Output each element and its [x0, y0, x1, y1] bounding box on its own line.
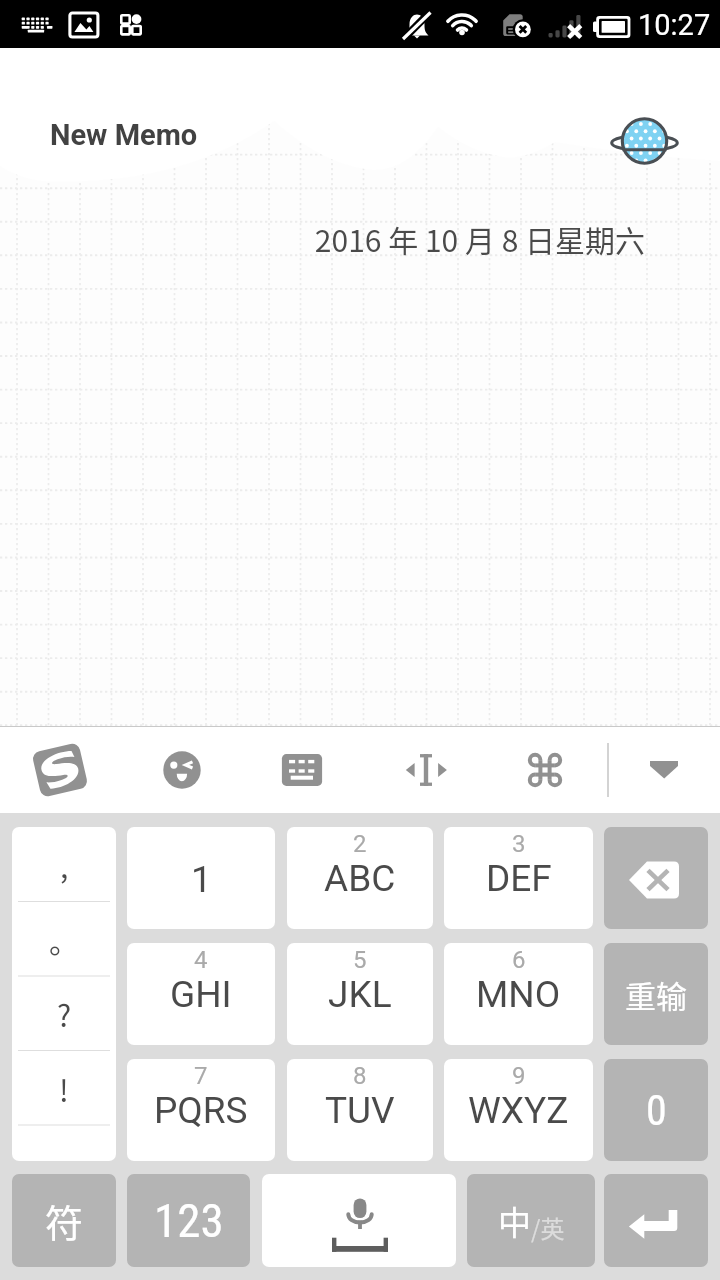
button[interactable]: Emoji [120, 727, 243, 813]
button[interactable]: 5 [287, 943, 433, 1045]
button[interactable]: 3 [444, 827, 593, 929]
staticText: 3 [512, 830, 526, 858]
button[interactable]: 2 [287, 827, 433, 929]
staticText: PQRS [154, 1089, 248, 1132]
staticText: 中 [498, 1197, 531, 1245]
button[interactable]: Sogou input [0, 727, 120, 813]
staticText: 0 [646, 1086, 667, 1135]
button[interactable]: 7 [127, 1059, 275, 1161]
button[interactable]: 6 [444, 943, 593, 1045]
staticText: WXYZ [468, 1089, 569, 1132]
staticText: , [60, 843, 69, 886]
staticText: TUV [325, 1089, 395, 1132]
staticText: MNO [476, 973, 561, 1016]
staticText: DEF [486, 857, 552, 900]
staticText: 1 [191, 858, 212, 901]
button[interactable]: Enter [604, 1174, 708, 1267]
staticText: 4 [194, 946, 208, 974]
button[interactable]: Hide keyboard [608, 727, 720, 813]
button[interactable]: 9 [444, 1059, 593, 1161]
button[interactable]: Theme [611, 113, 678, 169]
button[interactable]: Move cursor [361, 727, 487, 813]
button[interactable]: 符 [12, 1174, 116, 1267]
button[interactable]: 123 [127, 1174, 250, 1267]
staticText: ! [59, 1067, 69, 1110]
staticText: 8 [353, 1062, 367, 1090]
button[interactable]: Keyboard layout [243, 727, 361, 813]
button[interactable]: 0 [604, 1059, 708, 1161]
staticText: 6 [512, 946, 526, 974]
staticText: 123 [154, 1193, 224, 1248]
button[interactable]: 8 [287, 1059, 433, 1161]
staticText: 。 [49, 918, 79, 961]
staticText: 重输 [625, 972, 687, 1017]
button[interactable]: 重输 [604, 943, 708, 1045]
staticText: 5 [353, 946, 367, 974]
staticText: GHI [170, 973, 232, 1016]
staticText: 2 [353, 830, 367, 858]
button[interactable]: 4 [127, 943, 275, 1045]
button[interactable]: Shortcuts [487, 727, 603, 813]
staticText: 2016 年 10 月 8 日星期六 [314, 217, 645, 260]
staticText: 7 [194, 1062, 208, 1090]
button[interactable]: Voice input and space [262, 1174, 456, 1267]
button[interactable]: 1 [127, 827, 275, 929]
staticText: ? [57, 992, 72, 1035]
staticText: JKL [328, 973, 392, 1016]
staticText: 9 [512, 1062, 526, 1090]
staticText: 10:27 [638, 8, 711, 42]
staticText: /英 [531, 1210, 565, 1245]
staticText: ABC [324, 857, 396, 900]
button[interactable]: 中 [467, 1174, 595, 1267]
staticText: New Memo [50, 118, 198, 152]
button[interactable]: Punctuation [12, 827, 116, 1161]
button[interactable]: Backspace [604, 827, 708, 929]
staticText: 符 [45, 1193, 84, 1248]
